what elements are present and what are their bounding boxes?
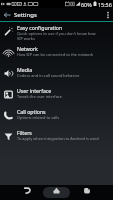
staticText: Settings — [14, 11, 37, 19]
button[interactable]: Home — [43, 187, 70, 198]
staticText: Quick options to use if you don't know h… — [17, 31, 99, 41]
staticText: Call options — [17, 108, 46, 115]
staticText: Media — [17, 66, 33, 73]
button[interactable]: Back — [0, 8, 14, 21]
staticText: Codecs and in-call sound behavior — [17, 73, 80, 78]
staticText: 60% — [81, 1, 92, 8]
staticText: Network — [17, 45, 38, 52]
staticText: Tweak the user interface — [17, 94, 62, 99]
button[interactable]: More options — [102, 8, 113, 21]
staticText: How SIP can be connected to the network — [17, 52, 94, 57]
button[interactable]: Filters — [0, 129, 113, 147]
staticText: User interface — [17, 87, 52, 94]
button[interactable]: Easy configuration — [0, 24, 113, 45]
staticText: Filters — [17, 129, 32, 136]
button[interactable]: Recent apps — [78, 185, 98, 200]
staticText: Easy configuration — [17, 24, 63, 31]
button[interactable]: Media — [0, 66, 113, 87]
button[interactable]: Network — [0, 45, 113, 66]
staticText: To apply when integration to Android is … — [17, 136, 99, 141]
button[interactable]: Back — [18, 185, 38, 200]
staticText: 15:56 — [98, 1, 112, 8]
staticText: Options related to calls — [17, 115, 60, 120]
button[interactable]: User interface — [0, 87, 113, 108]
button[interactable]: Call options — [0, 108, 113, 129]
